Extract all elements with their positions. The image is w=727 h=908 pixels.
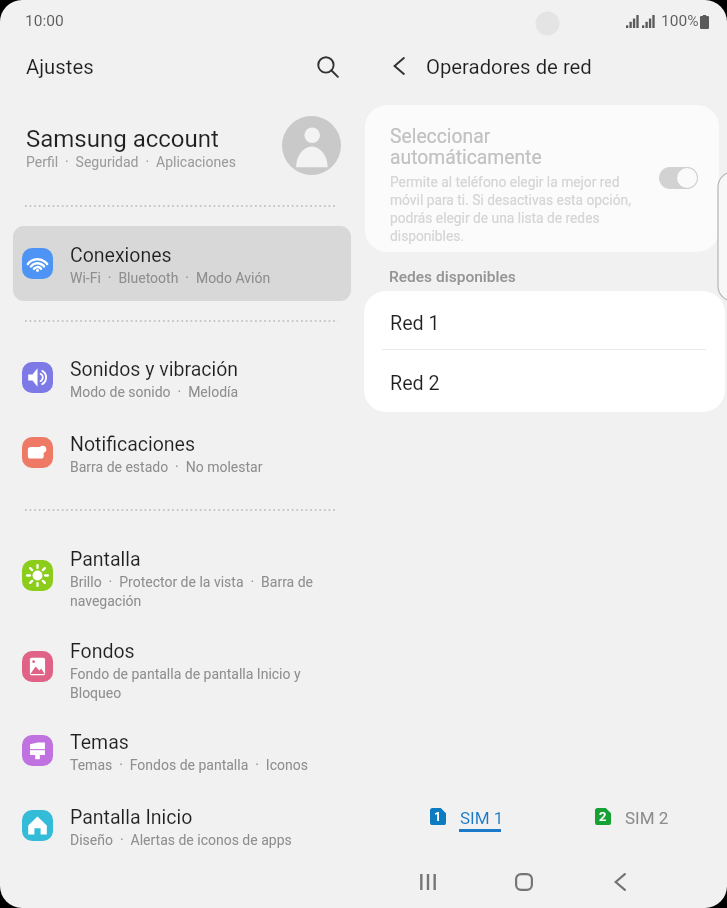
button[interactable]: Pantalla Inicio bbox=[0, 796, 363, 856]
staticText: Fondo de pantalla de pantalla Inicio y B… bbox=[70, 666, 301, 701]
staticText: SIM 1 bbox=[460, 808, 504, 828]
staticText: Modo de sonido · Melodía bbox=[70, 384, 239, 400]
staticText: Brillo · Protector de la vista · Barra d… bbox=[70, 574, 314, 609]
staticText: Pantalla Inicio bbox=[70, 806, 193, 829]
staticText: Ajustes bbox=[26, 55, 94, 79]
button[interactable]: Atrás bbox=[597, 859, 643, 905]
button[interactable]: Seleccionar automáticamente bbox=[365, 105, 719, 252]
button[interactable]: Seleccionar automáticamente bbox=[659, 167, 698, 189]
staticText: Redes disponibles bbox=[389, 268, 516, 286]
staticText: Sonidos y vibración bbox=[70, 358, 239, 381]
staticText: Notificaciones bbox=[70, 433, 196, 456]
staticText: Perfil · Seguridad · Aplicaciones bbox=[26, 154, 236, 170]
button[interactable]: Conexiones bbox=[13, 226, 351, 301]
button[interactable]: Recientes bbox=[405, 859, 451, 905]
button[interactable]: Buscar bbox=[308, 47, 348, 87]
staticText: 10:00 bbox=[25, 12, 64, 30]
staticText: Temas bbox=[70, 731, 129, 754]
staticText: Red 1 bbox=[390, 312, 440, 335]
staticText: Fondos bbox=[70, 640, 135, 663]
staticText: Conexiones bbox=[70, 244, 172, 267]
staticText: Samsung account bbox=[26, 125, 219, 153]
staticText: SIM 2 bbox=[625, 808, 669, 828]
button[interactable]: Sonidos y vibración bbox=[0, 348, 363, 408]
staticText: Temas · Fondos de pantalla · Iconos bbox=[70, 757, 308, 773]
staticText: 2 bbox=[599, 809, 607, 824]
staticText: Red 2 bbox=[390, 372, 440, 395]
staticText: 1 bbox=[434, 809, 442, 824]
staticText: Seleccionar automáticamente bbox=[390, 125, 542, 169]
staticText: Permite al teléfono elegir la mejor red … bbox=[390, 174, 631, 245]
button[interactable]: Red 2 bbox=[364, 351, 725, 412]
button[interactable]: Inicio bbox=[501, 859, 547, 905]
button[interactable]: Fondos bbox=[0, 630, 363, 690]
button[interactable]: Pantalla bbox=[0, 538, 363, 598]
button[interactable]: Samsung account bbox=[0, 106, 363, 186]
staticText: 100% bbox=[661, 12, 699, 30]
button[interactable]: Atrás bbox=[380, 47, 418, 85]
staticText: Wi-Fi · Bluetooth · Modo Avión bbox=[70, 270, 271, 286]
staticText: Barra de estado · No molestar bbox=[70, 459, 263, 475]
button[interactable]: Red 1 bbox=[364, 291, 725, 350]
button[interactable]: 1 bbox=[416, 798, 516, 838]
staticText: Diseño · Alertas de iconos de apps bbox=[70, 832, 292, 848]
button[interactable]: 2 bbox=[581, 798, 681, 838]
button[interactable]: Notificaciones bbox=[0, 423, 363, 483]
staticText: Pantalla bbox=[70, 548, 141, 571]
button[interactable]: Temas bbox=[0, 721, 363, 781]
staticText: Operadores de red bbox=[426, 55, 592, 79]
